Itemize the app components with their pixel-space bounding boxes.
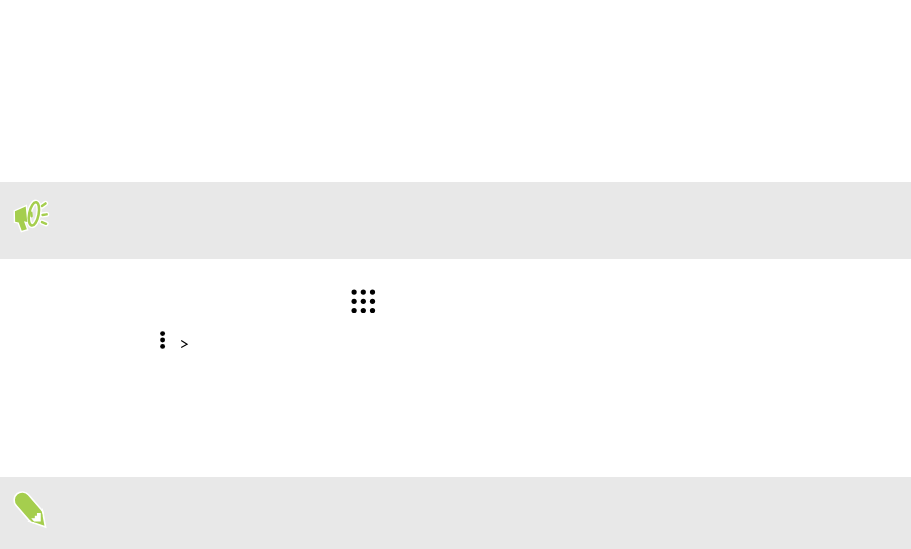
button[interactable]: Apps xyxy=(348,286,380,318)
button[interactable]: Announcement xyxy=(0,182,911,259)
button[interactable]: More options xyxy=(154,325,172,355)
button[interactable]: Edit xyxy=(12,489,50,531)
button[interactable]: Edit xyxy=(0,477,911,549)
button[interactable]: Next xyxy=(176,332,194,350)
button[interactable]: Announcement xyxy=(14,200,48,234)
